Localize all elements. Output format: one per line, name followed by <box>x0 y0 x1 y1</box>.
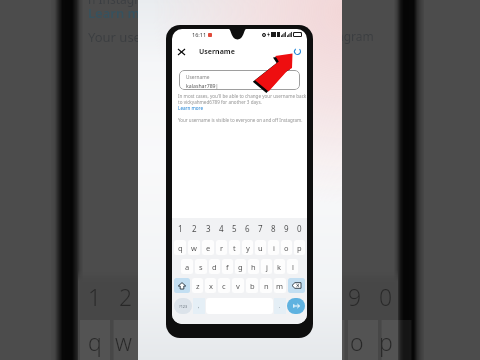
button[interactable]: j <box>261 259 272 274</box>
staticText: Your username is visible to everyone on … <box>178 117 303 123</box>
staticText: n <box>264 281 269 291</box>
button[interactable]: z <box>192 278 203 293</box>
button[interactable]: q <box>174 240 186 255</box>
button[interactable]: p <box>294 240 305 255</box>
staticText: 0 <box>297 223 302 234</box>
staticText: c <box>222 281 226 291</box>
button[interactable]: u <box>255 240 266 255</box>
staticText: a <box>185 262 190 272</box>
staticText: 7 <box>258 223 263 234</box>
staticText: o <box>350 326 364 357</box>
staticText: agram <box>337 28 374 44</box>
staticText: 3 <box>206 223 211 234</box>
button[interactable]: h <box>248 259 259 274</box>
button[interactable]: t <box>229 240 240 255</box>
button[interactable]: 1 <box>173 219 187 238</box>
staticText: o <box>284 243 289 253</box>
button[interactable]: s <box>195 259 207 274</box>
staticText: q <box>178 243 183 253</box>
staticText: l <box>292 262 294 272</box>
staticText: p <box>379 326 393 357</box>
button[interactable]: Period <box>274 298 286 314</box>
button[interactable]: Enter <box>287 298 305 314</box>
button[interactable]: l <box>287 259 298 274</box>
staticText: v <box>236 281 240 291</box>
staticText: m <box>276 281 284 291</box>
button[interactable]: g <box>235 259 246 274</box>
staticText: p <box>297 243 302 253</box>
button[interactable]: Close <box>175 45 188 58</box>
staticText: g <box>238 262 243 272</box>
staticText: 8 <box>271 223 276 234</box>
staticText: to vickyahmed6789 for another 3 days. <box>178 99 262 105</box>
button[interactable]: 6 <box>241 219 254 238</box>
staticText: Your usern <box>88 28 155 46</box>
staticText: Username <box>186 74 210 81</box>
staticText: w <box>191 243 197 253</box>
staticText: b <box>250 281 255 291</box>
staticText: 1 <box>88 281 102 312</box>
staticText: r <box>220 243 224 253</box>
button[interactable]: k <box>274 259 285 274</box>
staticText: . <box>279 303 281 310</box>
button[interactable]: 2 <box>187 219 201 238</box>
button[interactable]: i <box>268 240 279 255</box>
staticText: 1 <box>178 223 183 234</box>
button[interactable]: y <box>242 240 253 255</box>
staticText: q <box>88 326 102 357</box>
button[interactable]: f <box>222 259 233 274</box>
button[interactable]: Symbols <box>174 298 192 314</box>
staticText: 9 <box>284 223 289 234</box>
button[interactable]: c <box>218 278 230 293</box>
button[interactable]: Username <box>179 70 300 90</box>
button[interactable]: a <box>181 259 193 274</box>
button[interactable]: 3 <box>201 219 215 238</box>
staticText: 9 <box>348 281 362 312</box>
staticText: z <box>196 281 200 291</box>
staticText: n Instagram <box>88 0 157 7</box>
button[interactable]: w <box>188 240 200 255</box>
button[interactable]: 5 <box>228 219 241 238</box>
staticText: d <box>212 262 217 272</box>
staticText: 4 <box>219 223 224 234</box>
staticText: h <box>251 262 256 272</box>
button[interactable]: x <box>205 278 216 293</box>
staticText: Username <box>199 47 235 57</box>
staticText: k <box>277 262 282 272</box>
button[interactable]: 9 <box>280 219 293 238</box>
button[interactable]: e <box>202 240 214 255</box>
button[interactable]: o <box>281 240 292 255</box>
staticText: s <box>199 262 203 272</box>
staticText: u <box>258 243 263 253</box>
staticText: kalashar789| <box>186 82 219 89</box>
staticText: 16:11 <box>192 31 207 38</box>
button[interactable]: d <box>209 259 220 274</box>
staticText: e <box>206 243 211 253</box>
button[interactable]: Backspace <box>288 278 305 293</box>
button[interactable]: 4 <box>215 219 228 238</box>
staticText: ?123 <box>179 304 188 309</box>
staticText: , <box>198 303 200 310</box>
button[interactable]: Comma <box>193 298 205 314</box>
button[interactable]: Shift <box>174 278 190 293</box>
button[interactable]: m <box>274 278 286 293</box>
button[interactable]: b <box>246 278 258 293</box>
button[interactable]: r <box>216 240 227 255</box>
staticText: Learn mo <box>88 4 149 22</box>
staticText: 6 <box>245 223 250 234</box>
staticText: j <box>266 262 268 272</box>
button[interactable]: Saving <box>292 46 303 57</box>
button[interactable]: v <box>232 278 244 293</box>
staticText: 5 <box>232 223 237 234</box>
staticText: In most cases, you'll be able to change … <box>178 93 307 99</box>
staticText: f <box>226 262 229 272</box>
button[interactable]: 0 <box>293 219 306 238</box>
button[interactable]: 7 <box>254 219 267 238</box>
staticText: i <box>273 243 275 253</box>
staticText: w <box>115 326 132 357</box>
button[interactable]: n <box>260 278 272 293</box>
button[interactable]: Learn more <box>178 105 203 111</box>
button[interactable]: 8 <box>267 219 280 238</box>
staticText: t <box>233 243 236 253</box>
